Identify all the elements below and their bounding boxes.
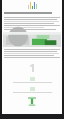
button[interactable]: Learn more [2,95,62,108]
button[interactable]: Article image [3,32,61,47]
button[interactable] [4,49,60,58]
button[interactable]: App logo [2,0,62,11]
button[interactable] [4,75,60,84]
button[interactable] [4,12,60,30]
button[interactable]: 1 [2,60,62,74]
staticText: 1 [29,60,36,74]
button[interactable] [4,85,60,94]
